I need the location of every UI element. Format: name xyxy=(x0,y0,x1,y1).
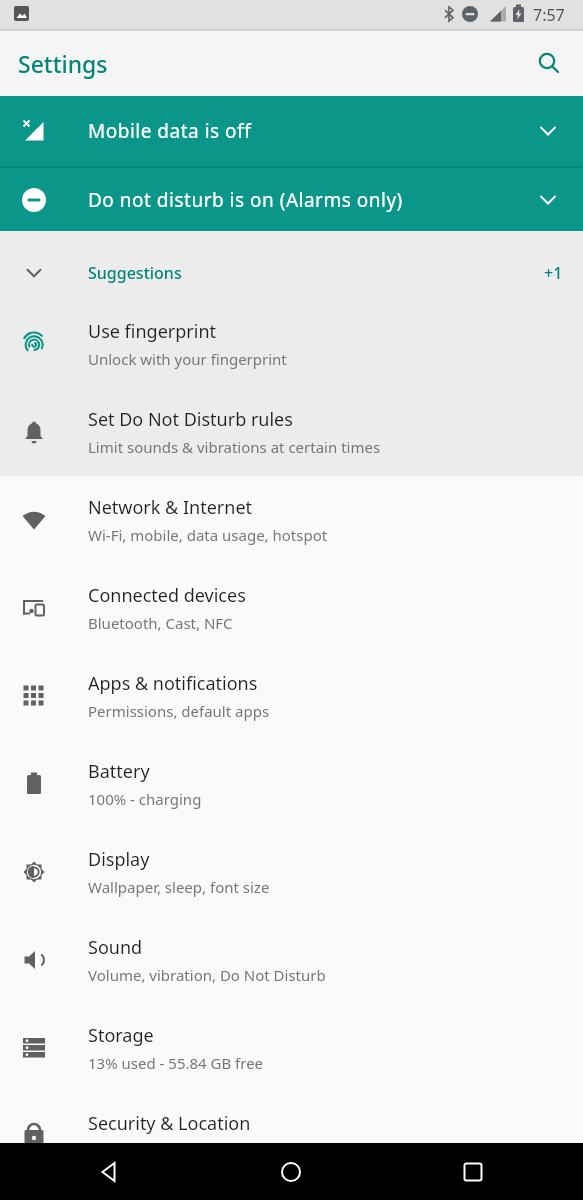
button[interactable] xyxy=(445,1143,501,1200)
staticText: 7:57 xyxy=(533,4,565,26)
staticText: Connected devices xyxy=(88,583,246,608)
button[interactable]: Battery xyxy=(0,740,583,828)
staticText: Wallpaper, sleep, font size xyxy=(88,877,270,897)
staticText: Unlock with your fingerprint xyxy=(88,349,287,369)
staticText: Suggestions xyxy=(88,262,182,284)
staticText: Volume, vibration, Do Not Disturb xyxy=(88,965,326,985)
button[interactable]: Do not disturb is on (Alarms only) xyxy=(0,168,583,231)
staticText: Bluetooth, Cast, NFC xyxy=(88,613,233,633)
staticText: 13% used - 55.84 GB free xyxy=(88,1053,264,1073)
staticText: Wi-Fi, mobile, data usage, hotspot xyxy=(88,525,328,545)
button[interactable]: Mobile data is off xyxy=(0,96,583,166)
staticText: Do not disturb is on (Alarms only) xyxy=(88,187,403,213)
button[interactable] xyxy=(537,52,561,76)
button[interactable]: Security & Location xyxy=(0,1092,583,1180)
staticText: Network & Internet xyxy=(88,495,253,520)
staticText: 100% - charging xyxy=(88,789,202,809)
button[interactable]: Network & Internet xyxy=(0,476,583,564)
staticText: Apps & notifications xyxy=(88,671,258,696)
staticText: Display xyxy=(88,847,150,872)
button[interactable] xyxy=(263,1143,319,1200)
staticText: Battery xyxy=(88,759,150,784)
staticText: Screen lock, fingerprint xyxy=(88,1141,252,1161)
button[interactable]: Apps & notifications xyxy=(0,652,583,740)
button[interactable]: Sound xyxy=(0,916,583,1004)
staticText: Sound xyxy=(88,935,143,960)
button[interactable]: Display xyxy=(0,828,583,916)
staticText: Settings xyxy=(18,48,108,79)
staticText: Storage xyxy=(88,1023,154,1048)
staticText: Mobile data is off xyxy=(88,118,252,144)
staticText: Use fingerprint xyxy=(88,319,216,344)
button[interactable]: Storage xyxy=(0,1004,583,1092)
staticText: Security & Location xyxy=(88,1111,251,1136)
button[interactable]: Use fingerprint xyxy=(0,300,583,388)
staticText: +1 xyxy=(544,262,563,284)
staticText: Permissions, default apps xyxy=(88,701,270,721)
button[interactable]: Suggestions xyxy=(0,246,583,300)
button[interactable]: Set Do Not Disturb rules xyxy=(0,388,583,476)
staticText: Limit sounds & vibrations at certain tim… xyxy=(88,437,381,457)
staticText: Set Do Not Disturb rules xyxy=(88,407,293,432)
button[interactable] xyxy=(81,1143,137,1200)
button[interactable]: Connected devices xyxy=(0,564,583,652)
